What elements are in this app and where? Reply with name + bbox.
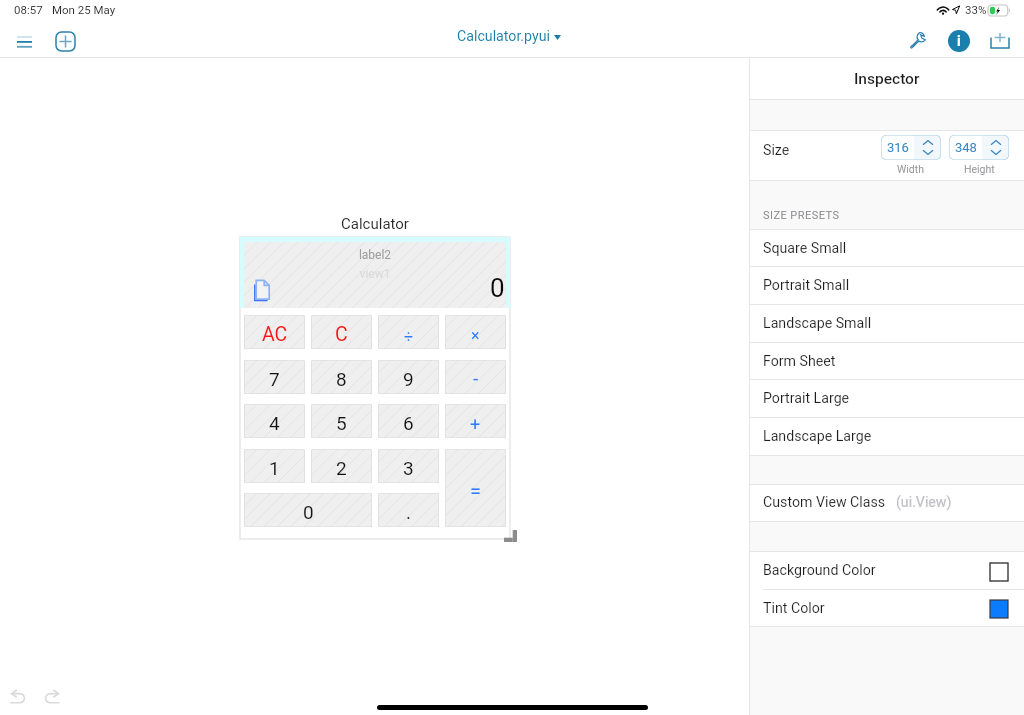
staticText: = [470,479,481,502]
button[interactable]: Landscape Large [750,417,1024,455]
button[interactable]: 348 [949,135,1009,160]
staticText: Portrait Large [763,390,850,407]
staticText: view1 [244,267,506,281]
button[interactable]: Add view [982,23,1017,58]
staticText: Landscape Small [763,315,872,332]
button[interactable]: 5 [311,404,372,438]
staticText: 2 [336,457,347,479]
button[interactable]: + [445,404,506,438]
button[interactable]: × [445,315,506,349]
staticText: Height [964,163,995,175]
button[interactable]: Add item [48,24,82,58]
button[interactable]: Tint Color [750,589,1024,627]
staticText: Inspector [854,70,920,88]
button[interactable]: Tools [900,23,935,58]
button[interactable]: 3 [378,449,439,483]
staticText: - [473,367,479,389]
staticText: 08:57 [14,3,43,16]
button[interactable]: Form Sheet [750,342,1024,380]
staticText: Width [897,163,925,175]
button[interactable]: Menu [7,24,41,59]
staticText: 1 [269,457,280,479]
staticText: AC [262,323,288,346]
button[interactable]: 1 [244,449,305,483]
button[interactable]: 6 [378,404,439,438]
button[interactable]: Portrait Small [750,266,1024,304]
staticText: C [335,323,348,346]
staticText: ÷ [404,327,414,346]
staticText: Background Color [763,562,876,579]
button[interactable]: - [445,360,506,394]
button[interactable]: 2 [311,449,372,483]
staticText: Size [763,142,790,159]
staticText: (ui.View) [896,494,952,511]
staticText: Calculator.pyui [457,28,550,45]
staticText: label2 [244,248,506,262]
button[interactable]: 0 [244,493,372,527]
staticText: 3 [403,457,414,479]
button[interactable]: Square Small [750,229,1024,267]
staticText: 6 [403,412,414,434]
staticText: SIZE PRESETS [763,209,840,222]
staticText: Custom View Class [763,494,886,511]
staticText: 8 [336,368,347,390]
button[interactable]: AC [244,315,305,349]
button[interactable]: 316 [881,135,941,160]
button[interactable]: Portrait Large [750,379,1024,417]
button[interactable]: 4 [244,404,305,438]
staticText: Form Sheet [763,353,836,370]
staticText: 33% [965,3,987,16]
staticText: Square Small [763,240,847,257]
staticText: Portrait Small [763,277,850,294]
staticText: 5 [336,412,347,434]
button[interactable]: 8 [311,360,372,394]
staticText: 348 [955,140,977,155]
staticText: 0 [303,501,314,523]
button[interactable]: . [378,493,439,527]
staticText: . [406,501,412,523]
button[interactable]: Redo [38,682,66,710]
staticText: i [957,33,961,49]
button[interactable]: Undo [4,682,32,710]
staticText: Tint Color [763,600,825,617]
staticText: 0 [490,273,505,303]
button[interactable]: Custom View Class [750,484,1024,521]
button[interactable]: Background Color [750,551,1024,589]
button[interactable]: C [311,315,372,349]
button[interactable]: Info [941,23,976,58]
button[interactable]: Calculator.pyui [457,28,561,45]
staticText: 7 [269,368,280,390]
staticText: 4 [269,412,280,434]
staticText: Landscape Large [763,428,872,445]
button[interactable]: Landscape Small [750,304,1024,342]
button[interactable]: 9 [378,360,439,394]
staticText: 9 [403,368,414,390]
staticText: Mon 25 May [52,3,116,16]
staticText: × [471,326,480,345]
button[interactable]: 7 [244,360,305,394]
staticText: Calculator [240,215,510,233]
staticText: 316 [887,140,909,155]
button[interactable]: = [445,449,506,527]
button[interactable]: ÷ [378,315,439,349]
staticText: + [470,413,481,434]
